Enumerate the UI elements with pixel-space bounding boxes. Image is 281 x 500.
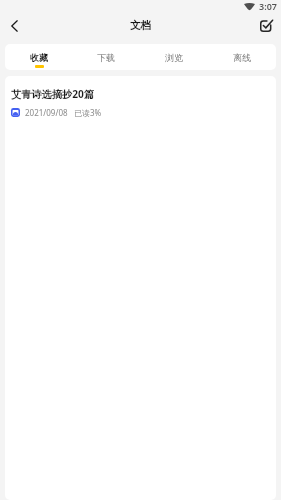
staticText: 2021/09/08 (25, 107, 68, 118)
staticText: 离线 (233, 52, 251, 63)
staticText: 艾青诗选摘抄20篇 (11, 87, 94, 101)
staticText: 下载 (97, 52, 115, 63)
button[interactable]: Back (0, 13, 28, 38)
button[interactable]: Select all (252, 13, 280, 38)
staticText: 收藏 (30, 52, 48, 63)
button[interactable]: 离线 (208, 44, 276, 70)
button[interactable]: 浏览 (140, 44, 208, 70)
button[interactable]: 下载 (72, 44, 140, 70)
staticText: 已读3% (74, 107, 102, 118)
staticText: 3:07 (259, 0, 277, 11)
staticText: 文档 (130, 19, 151, 32)
button[interactable]: 收藏 (5, 44, 72, 70)
staticText: 浏览 (165, 52, 183, 63)
button[interactable]: 艾青诗选摘抄20篇 (5, 76, 276, 118)
